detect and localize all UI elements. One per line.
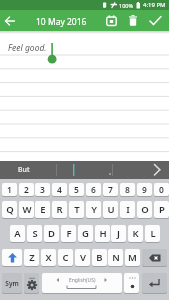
button[interactable] bbox=[24, 273, 39, 293]
button[interactable]: 9 bbox=[137, 183, 152, 196]
staticText: W bbox=[22, 203, 32, 216]
staticText: Y bbox=[91, 203, 97, 216]
staticText: U bbox=[107, 203, 115, 216]
staticText: 10 May 2016 bbox=[36, 16, 87, 28]
staticText: 100% bbox=[119, 2, 134, 9]
staticText: I bbox=[126, 203, 130, 216]
staticText: 6 bbox=[91, 184, 96, 196]
button[interactable]: I bbox=[120, 201, 135, 218]
staticText: C bbox=[62, 251, 69, 264]
staticText: 4 bbox=[57, 184, 62, 196]
button[interactable] bbox=[142, 249, 167, 266]
staticText: 3 bbox=[40, 184, 45, 196]
staticText: D bbox=[48, 227, 55, 240]
staticText: 5 bbox=[74, 184, 79, 196]
button[interactable]: S bbox=[27, 225, 42, 242]
staticText: E bbox=[40, 203, 46, 216]
button[interactable]: A bbox=[10, 225, 25, 242]
button[interactable]: K bbox=[128, 225, 143, 242]
button[interactable]: English(US) bbox=[42, 273, 122, 293]
button[interactable]: 4 bbox=[52, 183, 67, 196]
staticText: English(US) bbox=[69, 277, 96, 284]
staticText: M bbox=[128, 251, 137, 264]
button[interactable]: B bbox=[92, 249, 107, 266]
staticText: T bbox=[74, 203, 80, 216]
button[interactable]: O bbox=[137, 201, 152, 218]
button[interactable]: N bbox=[108, 249, 123, 266]
staticText: A bbox=[14, 227, 21, 240]
staticText: 1 bbox=[7, 184, 12, 196]
button[interactable]: R bbox=[52, 201, 67, 218]
button[interactable]: 2 bbox=[19, 183, 34, 196]
button[interactable] bbox=[0, 10, 20, 31]
button[interactable]: Y bbox=[86, 201, 101, 218]
button[interactable]: 5 bbox=[69, 183, 84, 196]
staticText: G bbox=[82, 227, 89, 240]
button[interactable]: Q bbox=[2, 201, 17, 218]
staticText: L bbox=[150, 227, 156, 240]
button[interactable]: But bbox=[0, 161, 169, 179]
staticText: 2 bbox=[24, 184, 29, 196]
button[interactable]: J bbox=[111, 225, 126, 242]
staticText: O bbox=[141, 203, 149, 216]
staticText: 4:19 PM bbox=[143, 1, 166, 9]
button[interactable] bbox=[2, 249, 22, 266]
staticText: 8 bbox=[125, 184, 130, 196]
button[interactable]: Z bbox=[24, 249, 39, 266]
button[interactable] bbox=[144, 10, 166, 31]
button[interactable]: 7 bbox=[103, 183, 118, 196]
button[interactable]: X bbox=[41, 249, 56, 266]
staticText: J bbox=[117, 227, 120, 240]
staticText: F bbox=[66, 227, 72, 240]
button[interactable]: 8 bbox=[120, 183, 135, 196]
button[interactable]: Sym bbox=[2, 273, 22, 293]
button[interactable]: E bbox=[35, 201, 50, 218]
button[interactable]: H bbox=[95, 225, 110, 242]
staticText: Q bbox=[6, 203, 14, 216]
staticText: 9 bbox=[142, 184, 147, 196]
button[interactable]: 0 bbox=[154, 183, 169, 196]
staticText: X bbox=[45, 251, 52, 264]
button[interactable]: C bbox=[58, 249, 73, 266]
staticText: K bbox=[132, 227, 139, 240]
button[interactable] bbox=[124, 273, 139, 293]
button[interactable]: 3 bbox=[35, 183, 50, 196]
button[interactable]: U bbox=[103, 201, 118, 218]
button[interactable] bbox=[123, 10, 142, 31]
staticText: B bbox=[96, 251, 103, 264]
staticText: Z bbox=[29, 251, 35, 264]
button[interactable]: 6 bbox=[86, 183, 101, 196]
button[interactable] bbox=[102, 10, 121, 31]
button[interactable] bbox=[142, 273, 167, 293]
button[interactable]: V bbox=[75, 249, 90, 266]
button[interactable]: T bbox=[69, 201, 84, 218]
button[interactable]: M bbox=[125, 249, 140, 266]
button[interactable]: L bbox=[145, 225, 160, 242]
button[interactable]: F bbox=[61, 225, 76, 242]
button[interactable]: W bbox=[19, 201, 34, 218]
staticText: 7 bbox=[108, 184, 113, 196]
button[interactable]: G bbox=[78, 225, 93, 242]
staticText: S bbox=[32, 227, 38, 240]
staticText: But bbox=[18, 165, 30, 175]
staticText: V bbox=[80, 251, 86, 264]
staticText: 0 bbox=[159, 184, 164, 196]
staticText: R bbox=[56, 203, 63, 216]
staticText: N bbox=[112, 251, 120, 264]
button[interactable]: P bbox=[154, 201, 169, 218]
staticText: H bbox=[99, 227, 107, 240]
staticText: P bbox=[159, 203, 165, 216]
staticText: Feel good. bbox=[8, 42, 47, 54]
button[interactable]: 1 bbox=[2, 183, 17, 196]
staticText: Sym bbox=[5, 279, 19, 288]
button[interactable]: D bbox=[44, 225, 59, 242]
